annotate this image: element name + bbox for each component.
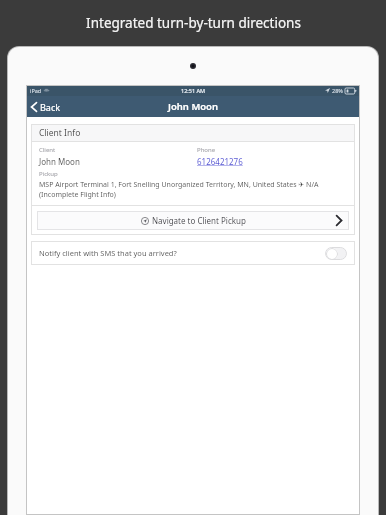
staticText: 12:51 AM (181, 87, 206, 94)
staticText: Phone (197, 146, 216, 154)
button[interactable]: Navigate to Client Pickup (37, 211, 349, 230)
staticText: Integrated turn-by-turn directions (86, 14, 301, 32)
staticText: Notify client with SMS that you arrived? (39, 248, 177, 258)
button[interactable]: Back (26, 96, 69, 117)
button[interactable]: Notify client with SMS that you arrived? (31, 241, 355, 265)
staticText: Client (39, 146, 56, 154)
staticText: John Moon (168, 100, 218, 113)
staticText: Client Info (39, 127, 81, 139)
staticText: 28% (332, 87, 343, 94)
staticText: 6126421276 (197, 156, 243, 167)
staticText: Navigate to Client Pickup (152, 215, 246, 226)
staticText: John Moon (39, 156, 80, 167)
staticText: Pickup (39, 170, 58, 178)
button[interactable]: Notify client with SMS toggle (325, 247, 347, 260)
staticText: iPad (30, 87, 42, 94)
button[interactable]: 6126421276 (197, 156, 243, 167)
staticText: MSP Airport Terminal 1, Fort Snelling Un… (39, 180, 349, 200)
staticText: Back (40, 101, 61, 113)
